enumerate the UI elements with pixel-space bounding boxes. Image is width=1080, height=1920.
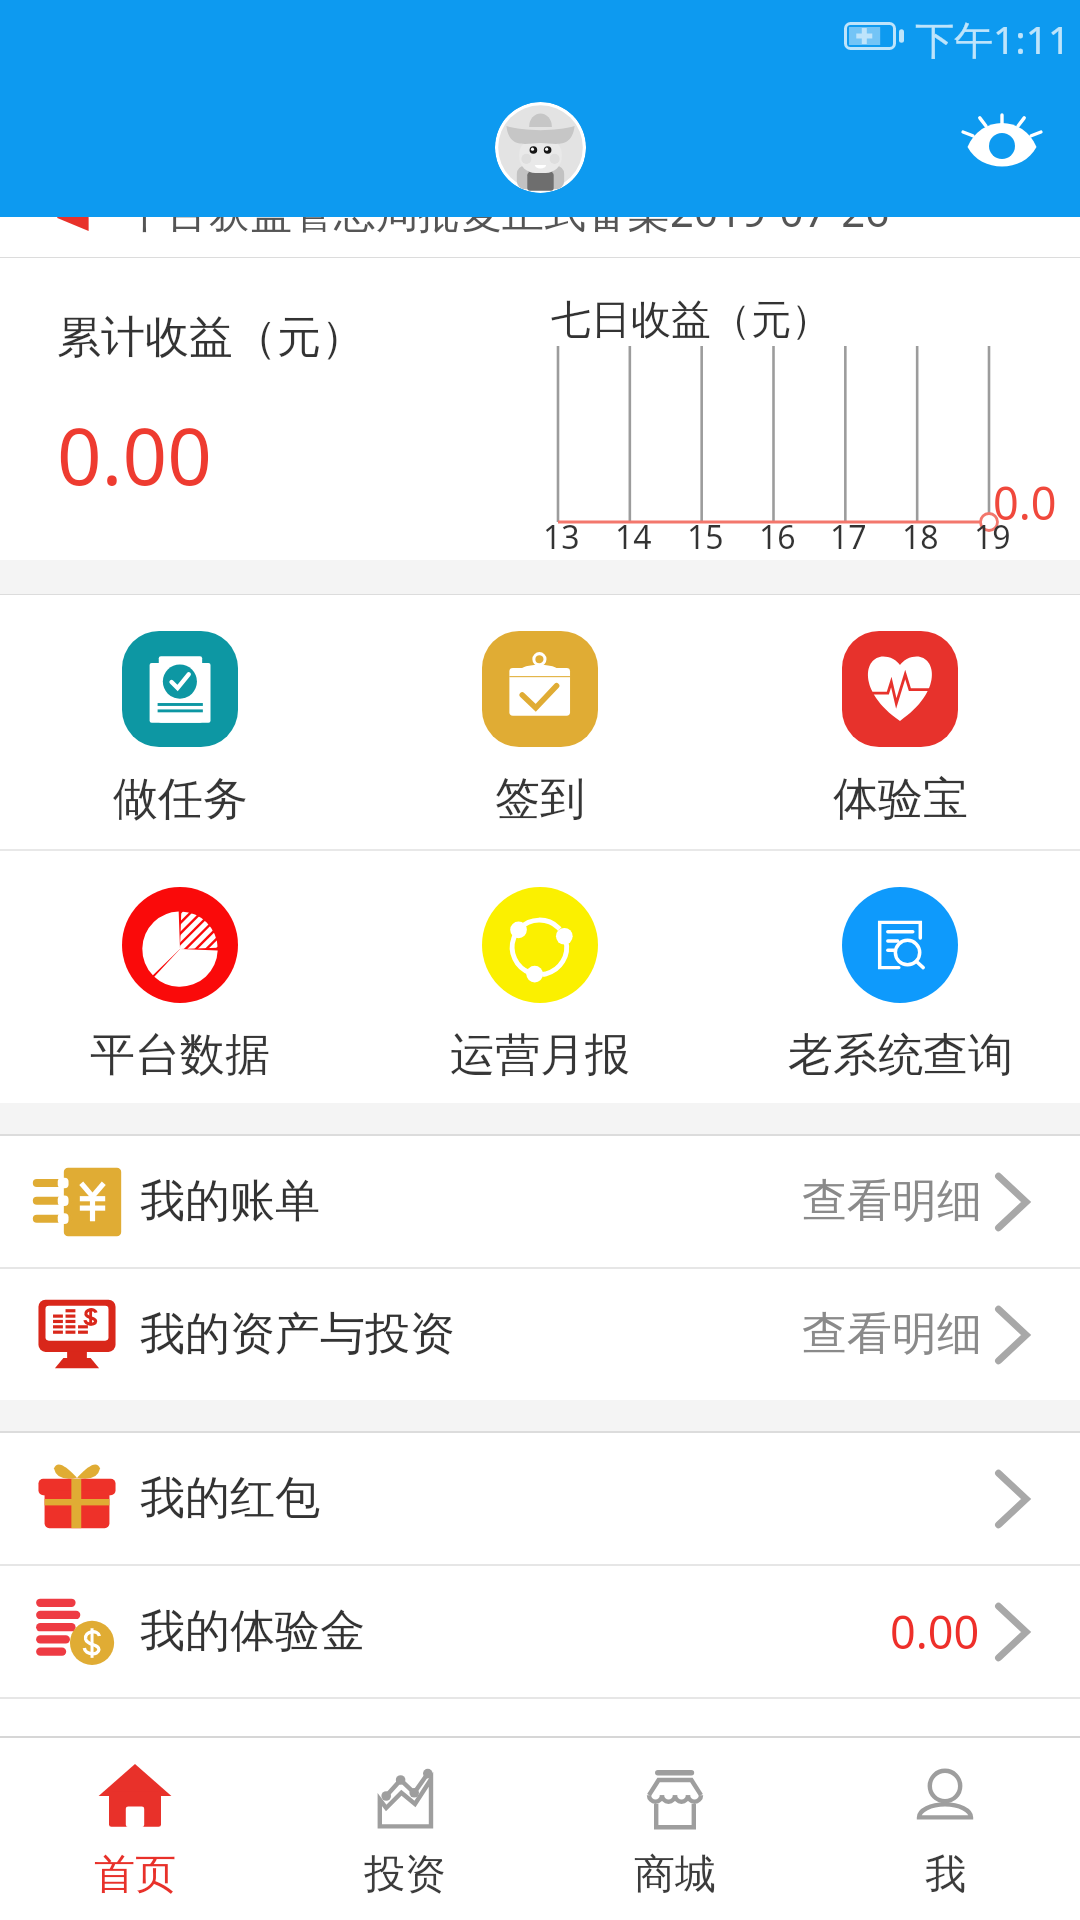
staticText: 16 [759,515,796,559]
staticText: 商城 [634,1849,716,1901]
staticText: 14 [615,515,652,559]
button[interactable]: 平台数据 [0,851,360,1103]
button[interactable] [0,1699,1080,1831]
button[interactable]: 老系统查询 [720,851,1080,1103]
button[interactable]: 我的账单 [0,1136,1080,1267]
button[interactable]: 我 [810,1738,1080,1920]
staticText: 七日收益（元） [551,294,831,344]
staticText: 运营月报 [450,1027,630,1084]
button[interactable]: 首页 [0,1738,270,1920]
button[interactable]: 签到 [360,595,720,849]
staticText: 下午1:11 [915,12,1071,65]
staticText: 我 [925,1849,966,1901]
staticText: 累计收益（元） [57,310,365,365]
button[interactable]: 我的红包 [0,1433,1080,1564]
button[interactable]: 投资 [270,1738,540,1920]
button[interactable]: 运营月报 [360,851,720,1103]
staticText: 我的资产与投资 [140,1306,455,1363]
button[interactable]: 我的资产与投资 [0,1269,1080,1400]
staticText: 首页 [94,1849,176,1901]
button[interactable]: Toggle visibility [948,84,1056,192]
staticText: 0.00 [57,402,212,508]
staticText: 18 [902,515,939,559]
staticText: 19 [974,515,1011,559]
staticText: 0.0 [993,472,1057,533]
staticText: 签到 [495,771,585,828]
button[interactable]: Profile [495,102,586,193]
staticText: 投资 [364,1849,446,1901]
button[interactable]: 我的体验金 [0,1566,1080,1697]
staticText: 我的红包 [140,1470,320,1527]
staticText: 体验宝 [833,771,968,828]
button[interactable]: 做任务 [0,595,360,849]
button[interactable]: 体验宝 [720,595,1080,849]
staticText: 老系统查询 [788,1027,1013,1084]
staticText: 13 [543,515,580,559]
staticText: 15 [687,515,724,559]
staticText: 17 [830,515,867,559]
staticText: 平台数据 [90,1027,270,1084]
staticText: 查看明细 [802,1173,982,1230]
button[interactable]: 商城 [540,1738,810,1920]
staticText: 0.00 [890,1601,980,1662]
staticText: 查看明细 [802,1306,982,1363]
staticText: 我的账单 [140,1173,320,1230]
staticText: 做任务 [113,771,248,828]
staticText: 我的体验金 [140,1603,365,1660]
staticText: 平台获监管总局批复正式备案2019-07-26 [124,182,890,239]
